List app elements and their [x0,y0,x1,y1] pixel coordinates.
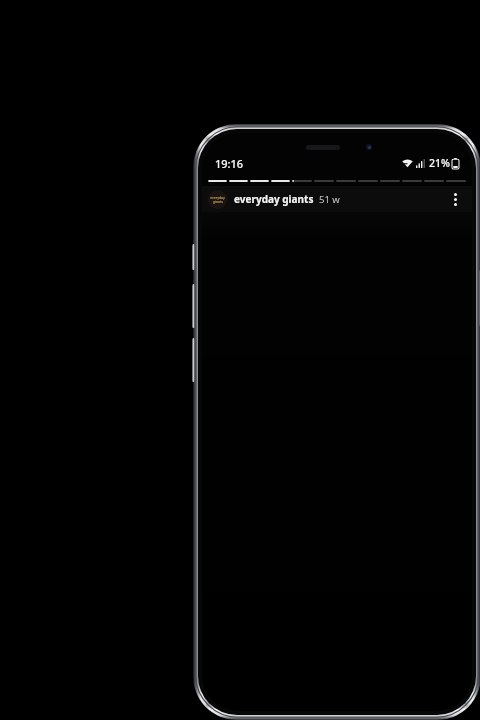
button[interactable]: everyday [208,190,227,209]
button[interactable]: More options [444,188,466,210]
staticText: 21% [429,156,450,170]
staticText: 51 w [319,193,340,206]
staticText: giants [213,200,223,204]
staticText: 19:16 [215,156,244,171]
staticText: everyday [210,196,225,200]
button[interactable]: everyday giants [234,192,340,206]
staticText: everyday giants [234,192,314,206]
